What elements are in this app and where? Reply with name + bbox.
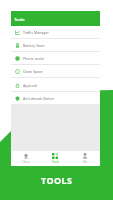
staticText: AppLock bbox=[23, 83, 38, 88]
button[interactable]: Me bbox=[70, 151, 100, 166]
staticText: Tools bbox=[52, 160, 59, 164]
button[interactable]: Clean bbox=[11, 151, 40, 166]
staticText: Clean bbox=[22, 160, 30, 164]
staticText: Phone cooler bbox=[23, 56, 45, 61]
staticText: TOOLS bbox=[41, 174, 73, 186]
button[interactable]: Phone cooler bbox=[11, 52, 100, 65]
button[interactable]: AppLock bbox=[11, 79, 100, 92]
button[interactable]: Traffic Manager bbox=[11, 26, 100, 39]
staticText: Anti-disturb Notice bbox=[23, 96, 54, 101]
button[interactable]: Clean Space bbox=[11, 65, 100, 78]
staticText: Battery Saver bbox=[23, 43, 45, 48]
staticText: Me bbox=[83, 160, 88, 164]
staticText: Traffic Manager bbox=[23, 30, 49, 35]
button[interactable]: Tools bbox=[40, 151, 70, 166]
staticText: Tools bbox=[14, 16, 25, 22]
button[interactable]: Anti-disturb Notice bbox=[11, 92, 100, 105]
button[interactable]: Battery Saver bbox=[11, 39, 100, 52]
staticText: Clean Space bbox=[23, 69, 43, 74]
button[interactable]: Tools bbox=[11, 11, 100, 26]
